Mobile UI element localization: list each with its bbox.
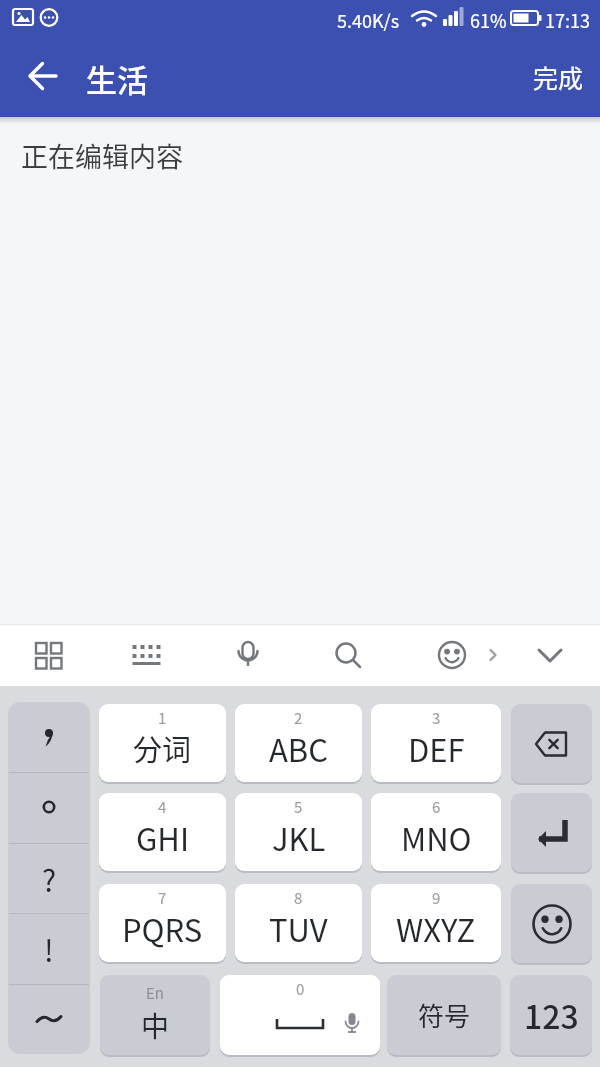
staticText: 0 <box>296 978 305 1000</box>
staticText: TUV <box>269 906 328 951</box>
staticText: 完成 <box>533 59 584 95</box>
staticText: 中 <box>141 1005 170 1046</box>
staticText: GHI <box>136 815 190 860</box>
staticText: 5 <box>294 796 303 818</box>
staticText: 分词 <box>133 727 192 769</box>
button[interactable] <box>16 49 70 103</box>
staticText: 1 <box>158 707 167 729</box>
staticText: 2 <box>294 707 303 729</box>
staticText: DEF <box>408 726 465 771</box>
staticText: 正在编辑内容 <box>21 136 183 175</box>
button[interactable]: 123 <box>510 975 592 1055</box>
staticText: 6 <box>432 796 441 818</box>
button[interactable] <box>522 627 578 683</box>
staticText: 123 <box>524 992 579 1038</box>
staticText: 7 <box>158 887 167 909</box>
button[interactable]: 符号 <box>387 975 501 1055</box>
button[interactable]: 1 <box>99 704 226 782</box>
button[interactable]: 8 <box>235 884 362 962</box>
button[interactable]: ! <box>8 913 90 983</box>
button[interactable] <box>8 984 90 1054</box>
button[interactable]: 0 <box>220 975 380 1055</box>
staticText: 5.40K/s <box>337 7 400 33</box>
button[interactable] <box>8 772 90 842</box>
button[interactable] <box>220 627 276 683</box>
button[interactable]: 2 <box>235 704 362 782</box>
button[interactable] <box>320 627 376 683</box>
button[interactable]: 9 <box>371 884 501 962</box>
button[interactable]: 7 <box>99 884 226 962</box>
button[interactable] <box>20 627 76 683</box>
staticText: 生活 <box>86 56 148 101</box>
button[interactable]: 5 <box>235 793 362 871</box>
staticText: 17:13 <box>545 7 590 33</box>
staticText: ! <box>44 927 54 970</box>
staticText: 61% <box>470 7 507 33</box>
staticText: PQRS <box>122 906 203 951</box>
button[interactable]: En <box>100 975 210 1055</box>
staticText: WXYZ <box>396 906 476 951</box>
button[interactable] <box>511 793 592 872</box>
button[interactable] <box>511 704 592 783</box>
button[interactable] <box>118 627 174 683</box>
button[interactable] <box>8 702 90 772</box>
staticText: JKL <box>272 815 326 860</box>
staticText: ? <box>42 857 57 900</box>
staticText: ABC <box>269 726 328 771</box>
staticText: En <box>146 982 164 1004</box>
staticText: 4 <box>158 796 167 818</box>
staticText: MNO <box>401 815 472 860</box>
button[interactable] <box>511 884 592 963</box>
button[interactable] <box>465 627 521 683</box>
staticText: 符号 <box>418 996 471 1034</box>
button[interactable] <box>424 627 480 683</box>
staticText: 9 <box>432 887 441 909</box>
button[interactable]: 3 <box>371 704 501 782</box>
button[interactable]: 6 <box>371 793 501 871</box>
button[interactable]: 完成 <box>523 49 594 105</box>
staticText: 8 <box>294 887 303 909</box>
button[interactable]: 4 <box>99 793 226 871</box>
button[interactable]: ? <box>8 843 90 913</box>
staticText: 3 <box>432 707 441 729</box>
